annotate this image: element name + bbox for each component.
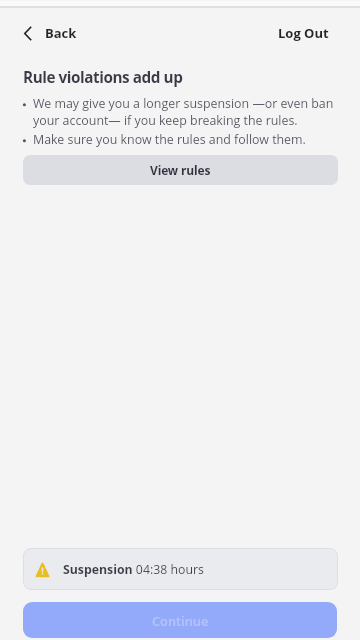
- other: Warning: [36, 563, 49, 577]
- button[interactable]: View rules: [23, 155, 338, 185]
- button[interactable]: Log Out: [274, 17, 333, 49]
- button[interactable]: Continue: [23, 602, 337, 638]
- staticText: View rules: [150, 162, 211, 178]
- staticText: We may give you a longer suspension —or …: [33, 94, 338, 128]
- staticText: Continue: [152, 612, 209, 629]
- staticText: Log Out: [278, 24, 329, 42]
- staticText: Make sure you know the rules and follow …: [33, 130, 306, 147]
- staticText: Back: [45, 24, 77, 42]
- button[interactable]: Back: [16, 17, 87, 49]
- staticText: Suspension 04:38 hours: [63, 561, 204, 578]
- staticText: Rule violations add up: [23, 67, 183, 87]
